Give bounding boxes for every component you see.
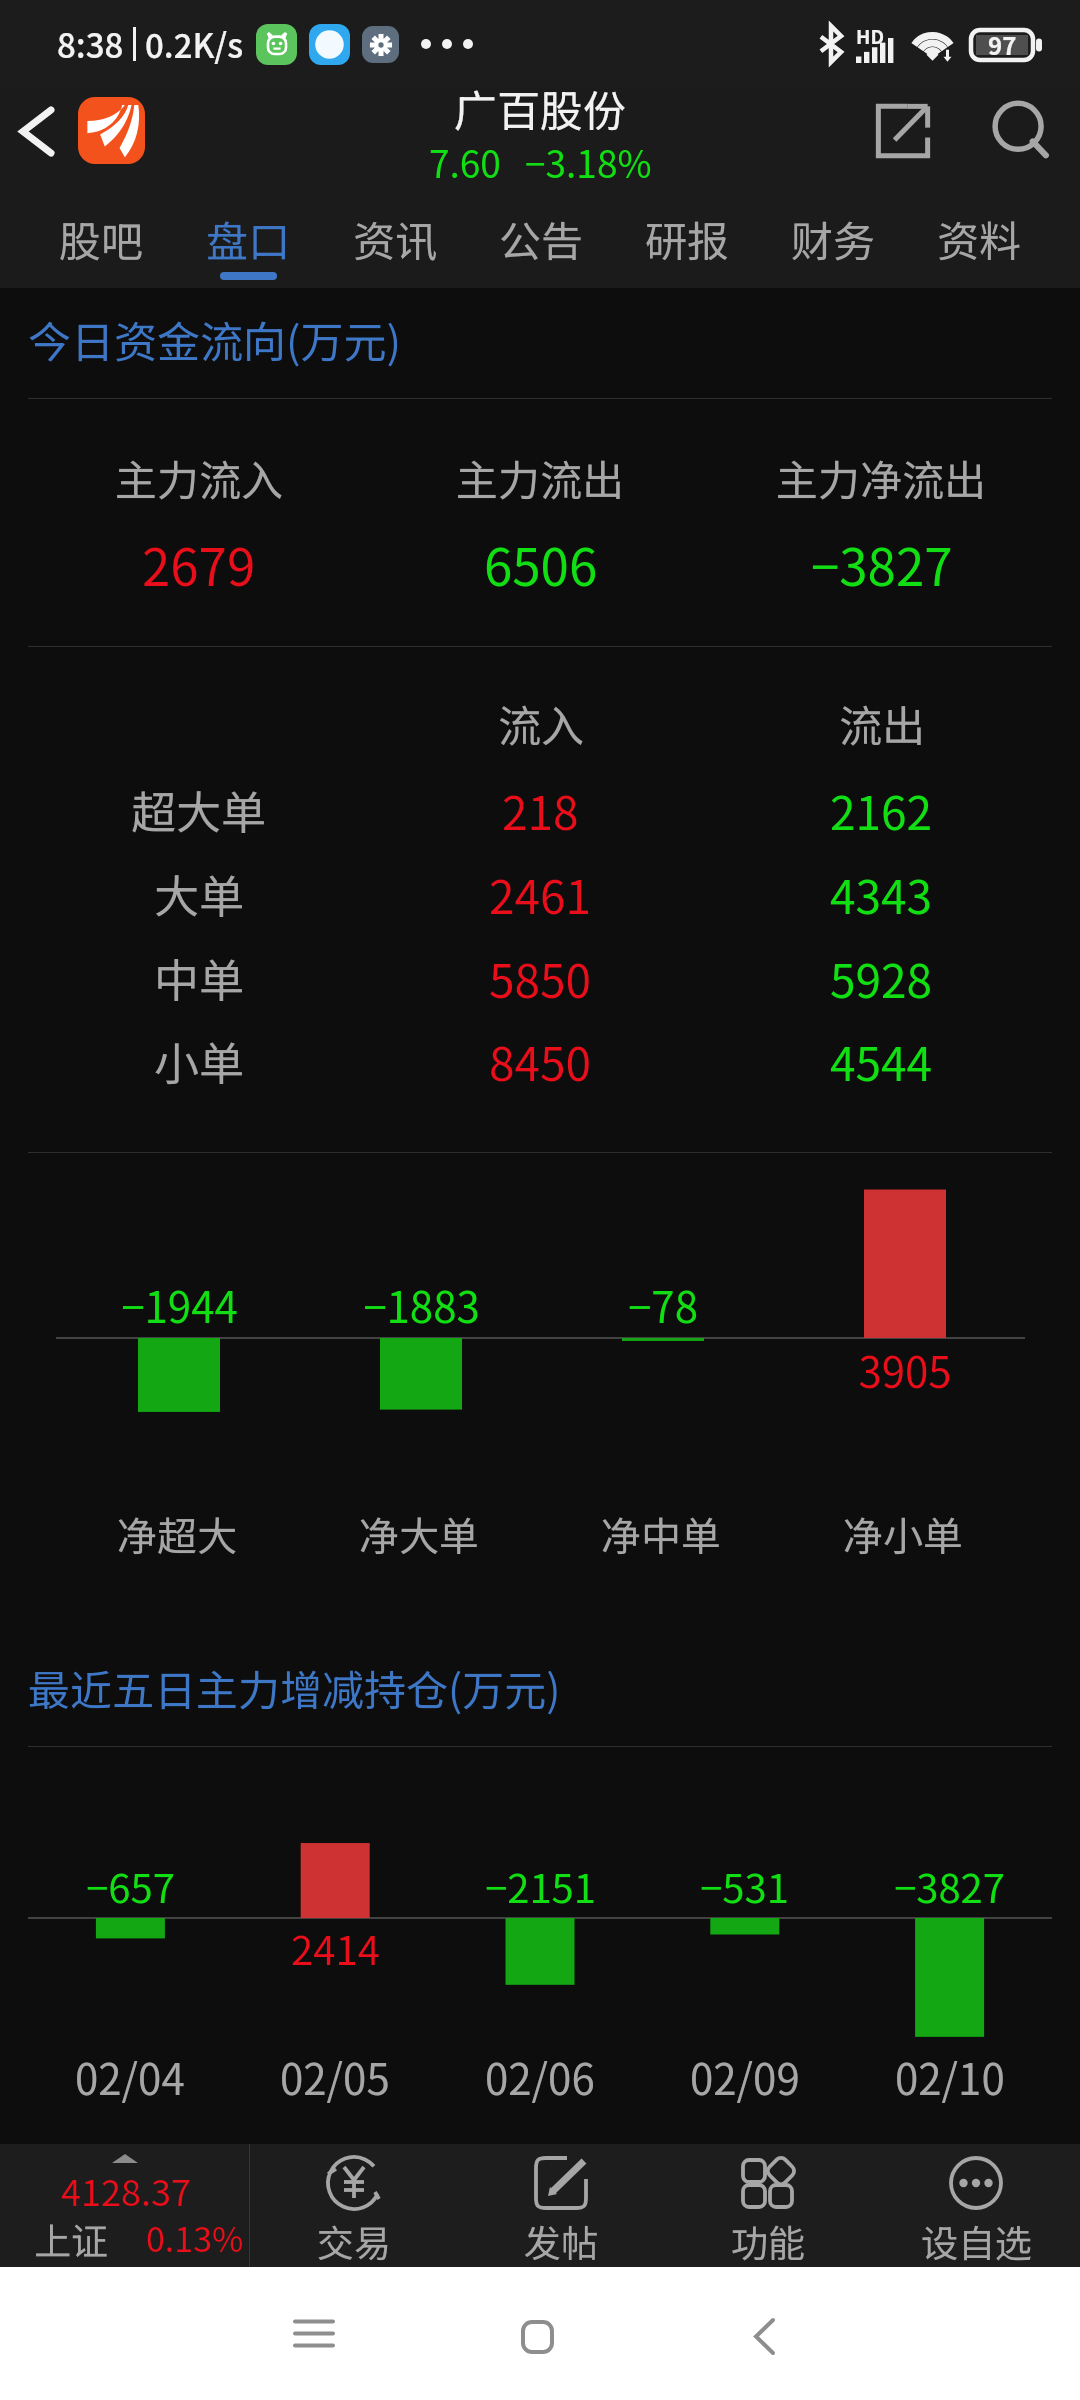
staticText: 上证 [34, 2212, 108, 2266]
staticText: 4343 [830, 861, 933, 928]
staticText: 3905 [858, 1339, 952, 1400]
button[interactable]: 资料 [906, 192, 1052, 288]
button[interactable]: 公告 [468, 192, 614, 288]
staticText: 净大单 [359, 1505, 479, 1563]
button[interactable]: Share [866, 94, 940, 168]
staticText: −3827 [894, 1857, 1005, 1915]
staticText: 2461 [489, 861, 592, 928]
staticText: 广百股份 [454, 77, 626, 139]
staticText: 8:38 [57, 20, 124, 68]
staticText: 2679 [142, 527, 256, 601]
button[interactable]: 交易 [250, 2144, 457, 2267]
button[interactable]: 资讯 [322, 192, 468, 288]
staticText: −3827 [811, 527, 953, 601]
staticText: 流出 [839, 692, 925, 754]
button[interactable]: Recents [254, 2273, 374, 2393]
staticText: 4128.37 [61, 2164, 191, 2216]
staticText: 0.13% [146, 2213, 244, 2262]
staticText: 最近五日主力增减持仓(万元) [28, 1657, 561, 1718]
button[interactable]: Home [477, 2277, 597, 2397]
staticText: 资料 [937, 208, 1022, 269]
staticText: 盘口 [206, 208, 291, 269]
button[interactable]: Back [4, 98, 70, 164]
staticText: 大单 [154, 861, 245, 926]
staticText: 超大单 [131, 777, 267, 842]
button[interactable]: 设自选 [872, 2144, 1080, 2267]
staticText: −78 [628, 1274, 698, 1335]
staticText: 设自选 [921, 2214, 1032, 2268]
staticText: 资讯 [353, 208, 438, 269]
staticText: 2162 [830, 777, 933, 844]
staticText: 4544 [830, 1028, 933, 1095]
staticText: −1883 [363, 1274, 480, 1335]
staticText: 功能 [731, 2214, 805, 2268]
staticText: 0.2K/s [145, 20, 244, 68]
staticText: 中单 [154, 945, 245, 1010]
staticText: 5850 [489, 945, 592, 1012]
staticText: 主力净流出 [776, 447, 987, 508]
staticText: 8450 [489, 1028, 592, 1095]
staticText: 6506 [484, 527, 598, 601]
staticText: 主力流入 [115, 447, 284, 508]
staticText: 02/06 [485, 2046, 595, 2107]
staticText: 研报 [645, 208, 730, 269]
staticText: 流入 [498, 692, 584, 754]
staticText: 218 [502, 777, 579, 844]
button[interactable]: 功能 [664, 2144, 872, 2267]
staticText: 02/04 [75, 2046, 185, 2107]
staticText: 公告 [499, 208, 584, 269]
staticText: HD [856, 22, 884, 50]
button[interactable]: 股吧 [28, 192, 175, 288]
staticText: 97 [988, 27, 1017, 62]
staticText: 发帖 [524, 2214, 598, 2268]
staticText: −657 [86, 1857, 175, 1915]
button[interactable]: 发帖 [457, 2144, 664, 2267]
staticText: 净小单 [843, 1505, 963, 1563]
staticText: −531 [700, 1857, 789, 1915]
button[interactable]: Eastmoney [78, 97, 145, 164]
staticText: 净中单 [601, 1505, 721, 1563]
staticText: 主力流出 [456, 447, 625, 508]
button[interactable]: 财务 [760, 192, 906, 288]
staticText: 5928 [830, 945, 933, 1012]
staticText: −3.18% [525, 135, 652, 189]
button[interactable]: 研报 [614, 192, 760, 288]
staticText: 02/05 [280, 2046, 390, 2107]
staticText: −2151 [485, 1857, 596, 1915]
button[interactable]: 盘口 [175, 192, 322, 288]
staticText: −1944 [121, 1274, 238, 1335]
staticText: 02/10 [895, 2046, 1005, 2107]
staticText: 股吧 [59, 208, 144, 269]
staticText: 财务 [791, 208, 876, 269]
staticText: 02/09 [690, 2046, 800, 2107]
staticText: 今日资金流向(万元) [28, 308, 402, 370]
button[interactable]: 4128.37 [0, 2144, 249, 2267]
button[interactable]: Back [704, 2276, 824, 2396]
staticText: 净超大 [117, 1505, 237, 1563]
staticText: 交易 [317, 2214, 391, 2268]
staticText: 小单 [154, 1028, 245, 1093]
staticText: 7.60 [429, 135, 501, 189]
button[interactable]: Search [984, 94, 1058, 168]
staticText: 2414 [291, 1919, 380, 1977]
